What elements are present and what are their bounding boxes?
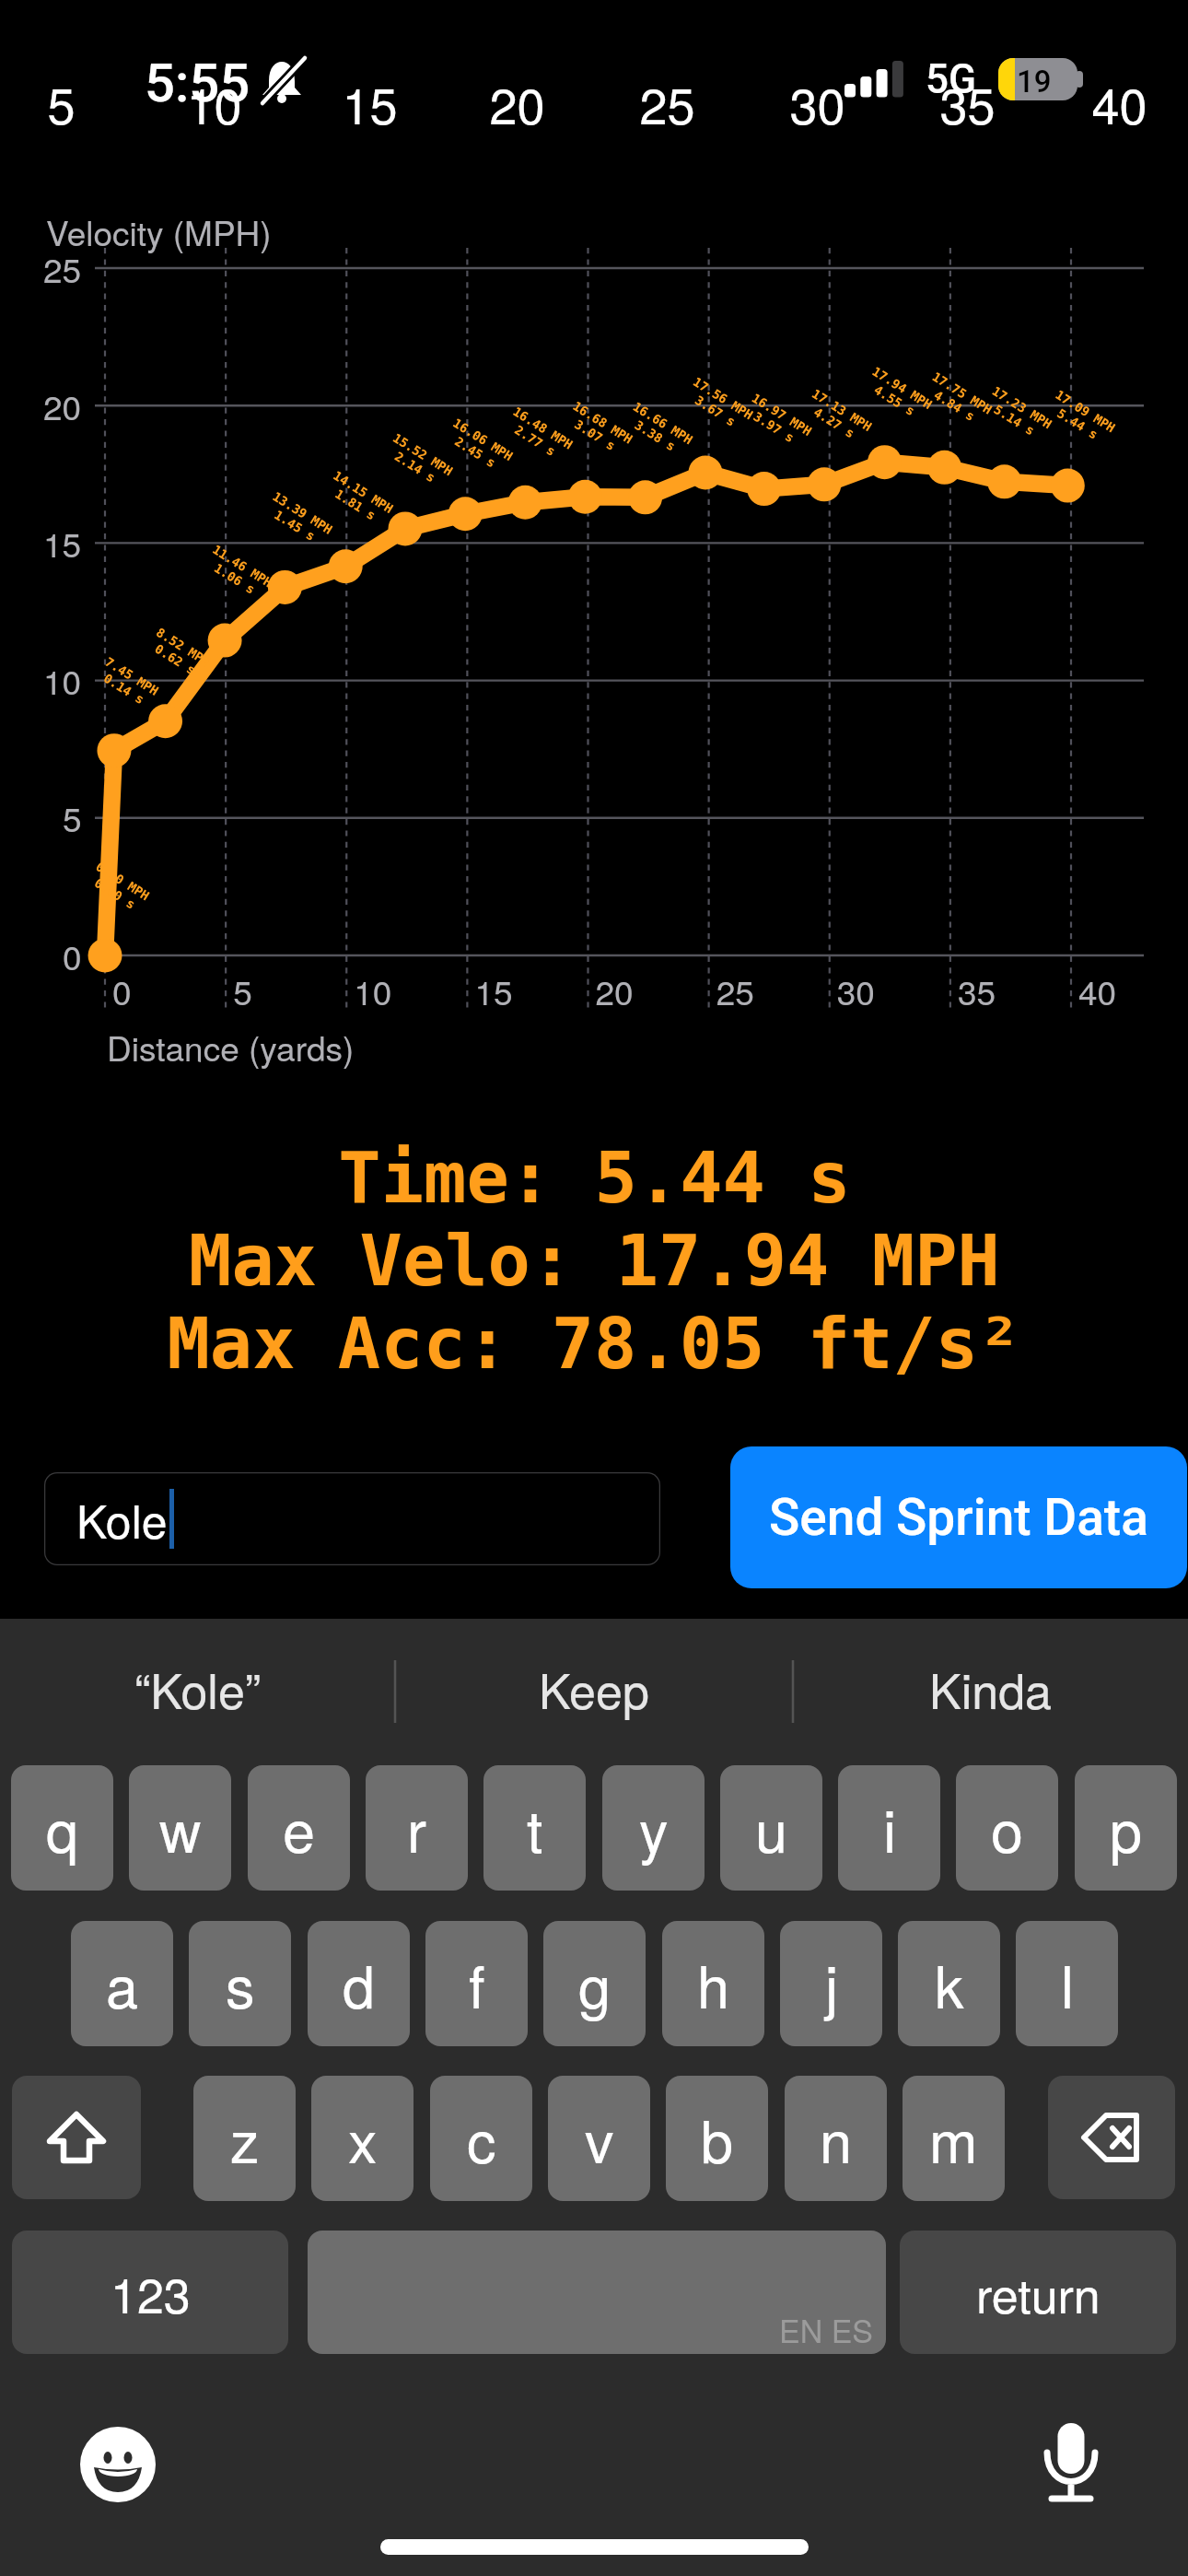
staticText: Max Velo: 17.94 MPH (189, 1220, 1000, 1303)
button[interactable]: l (1016, 1921, 1118, 2046)
staticText: n (820, 2097, 853, 2180)
staticText: 123 (111, 2258, 191, 2326)
button[interactable]: m (903, 2076, 1005, 2201)
button[interactable]: w (129, 1765, 231, 1891)
button[interactable]: 123 (12, 2231, 288, 2354)
staticText: x (348, 2097, 378, 2180)
staticText: m (929, 2097, 978, 2180)
button[interactable]: Emoji (80, 2427, 156, 2502)
staticText: EN ES (779, 2307, 874, 2352)
button[interactable]: h (662, 1921, 764, 2046)
staticText: r (407, 1786, 426, 1869)
staticText: z (230, 2097, 260, 2180)
staticText: 5:55 (145, 52, 250, 114)
button[interactable]: v (548, 2076, 650, 2201)
staticText: Max Acc: 78.05 ft/s² (167, 1303, 1021, 1386)
button[interactable]: Kole (44, 1472, 660, 1565)
button[interactable]: i (838, 1765, 940, 1891)
button[interactable]: t (483, 1765, 586, 1891)
button[interactable]: f (425, 1921, 528, 2046)
button[interactable]: Keep (396, 1619, 792, 1757)
staticText: h (697, 1942, 730, 2025)
staticText: t (527, 1786, 543, 1869)
button[interactable]: g (543, 1921, 646, 2046)
button[interactable]: s (189, 1921, 291, 2046)
staticText: p (1110, 1786, 1143, 1869)
button[interactable]: d (308, 1921, 410, 2046)
staticText: k (935, 1942, 964, 2025)
button[interactable]: j (780, 1921, 882, 2046)
button[interactable]: e (248, 1765, 350, 1891)
button[interactable]: x (311, 2076, 413, 2201)
button[interactable]: y (602, 1765, 705, 1891)
staticText: d (343, 1942, 376, 2025)
staticText: s (226, 1942, 255, 2025)
button[interactable]: c (430, 2076, 532, 2201)
button[interactable]: q (11, 1765, 113, 1891)
button[interactable]: Kinda (792, 1619, 1188, 1757)
button[interactable]: o (956, 1765, 1058, 1891)
button[interactable]: p (1075, 1765, 1177, 1891)
staticText: a (106, 1942, 139, 2025)
staticText: Keep (539, 1654, 649, 1722)
staticText: w (159, 1786, 202, 1869)
staticText: o (991, 1786, 1024, 1869)
button[interactable]: u (720, 1765, 822, 1891)
staticText: Kole (76, 1486, 168, 1552)
staticText: l (1061, 1942, 1074, 2025)
button[interactable]: “Kole” (0, 1619, 396, 1757)
staticText: c (467, 2097, 496, 2180)
button[interactable]: z (193, 2076, 296, 2201)
button[interactable]: Shift (12, 2076, 141, 2199)
button[interactable]: r (366, 1765, 468, 1891)
button[interactable]: return (900, 2231, 1176, 2354)
staticText: 5G (926, 55, 976, 103)
staticText: b (701, 2097, 734, 2180)
staticText: 19 (1017, 64, 1052, 100)
staticText: return (976, 2258, 1101, 2326)
staticText: i (883, 1786, 896, 1869)
button[interactable]: Send Sprint Data (730, 1446, 1187, 1588)
staticText: f (469, 1942, 485, 2025)
staticText: y (639, 1786, 669, 1869)
button[interactable]: space (308, 2231, 886, 2354)
staticText: u (755, 1786, 788, 1869)
staticText: g (578, 1942, 611, 2025)
staticText: e (283, 1786, 316, 1869)
button[interactable]: n (785, 2076, 887, 2201)
staticText: Kinda (929, 1654, 1052, 1722)
staticText: “Kole” (134, 1654, 262, 1722)
button[interactable]: Backspace (1048, 2076, 1175, 2199)
button[interactable]: k (898, 1921, 1000, 2046)
staticText: Send Sprint Data (769, 1488, 1148, 1547)
staticText: v (585, 2097, 614, 2180)
staticText: Time: 5.44 s (338, 1137, 851, 1220)
button[interactable]: a (71, 1921, 173, 2046)
staticText: q (46, 1786, 79, 1869)
button[interactable]: Dictation (1039, 2421, 1103, 2504)
staticText: j (825, 1942, 838, 2025)
button[interactable]: b (666, 2076, 768, 2201)
